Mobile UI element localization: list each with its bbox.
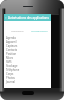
staticText: Contacts <box>6 48 18 52</box>
staticText: AUTORISATIONS <box>31 30 48 33</box>
staticText: Appareil <box>6 40 17 44</box>
other: Navigate up <box>5 17 7 19</box>
button[interactable]: Micro <box>6 56 51 60</box>
button[interactable]: Home <box>22 91 34 95</box>
button[interactable]: Appareil <box>6 40 51 44</box>
button[interactable]: SMS <box>6 60 51 64</box>
button[interactable]: Journal <box>6 80 51 84</box>
staticText: Applications <box>11 30 24 33</box>
button[interactable]: Stockage <box>6 64 51 68</box>
staticText: Corps <box>6 72 14 76</box>
staticText: Micro <box>6 56 14 60</box>
button[interactable]: Téléphone <box>6 68 51 72</box>
button[interactable]: Capteurs <box>6 44 51 48</box>
button[interactable]: Navigate up <box>4 14 51 21</box>
staticText: Photos <box>6 76 15 80</box>
button[interactable]: Position <box>6 52 51 56</box>
button[interactable]: Photos <box>6 76 51 80</box>
staticText: Autorisations des applications <box>8 16 49 20</box>
staticText: Stockage <box>6 64 18 68</box>
button[interactable]: Agenda <box>6 36 51 40</box>
staticText: Agenda <box>6 36 16 40</box>
button[interactable]: Corps <box>6 72 51 76</box>
staticText: Capteurs <box>6 44 18 48</box>
button[interactable]: Contacts <box>6 48 51 52</box>
staticText: Journal <box>6 80 15 84</box>
staticText: Téléphone <box>6 68 20 72</box>
staticText: Position <box>6 52 17 56</box>
staticText: SMS <box>6 60 12 64</box>
